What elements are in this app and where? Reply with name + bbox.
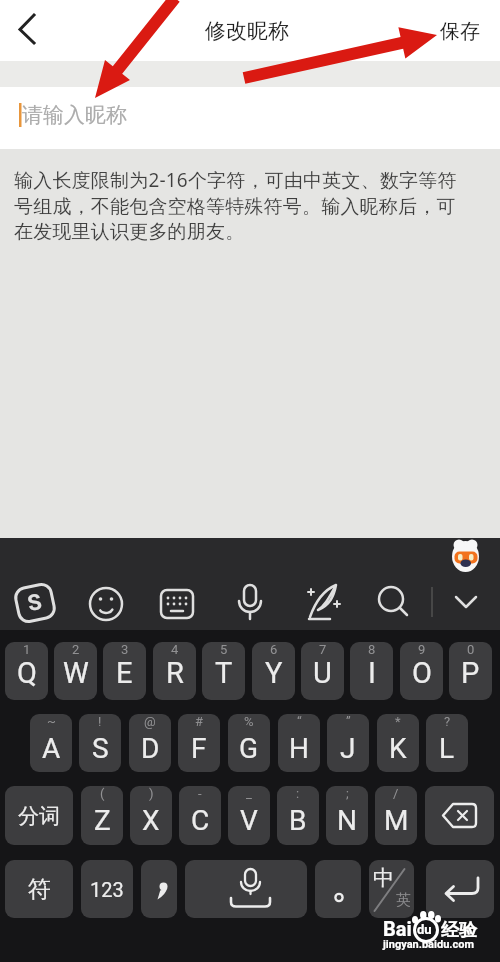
staticText: T: [215, 656, 233, 690]
staticText: 英: [396, 891, 411, 910]
button[interactable]: #: [178, 714, 220, 772]
staticText: L: [439, 732, 455, 765]
button[interactable]: [84, 582, 128, 624]
staticText: -: [198, 786, 202, 801]
button[interactable]: 分词: [5, 786, 73, 845]
button[interactable]: [444, 582, 488, 624]
button[interactable]: [141, 860, 177, 918]
button[interactable]: [425, 786, 494, 845]
button[interactable]: [426, 860, 494, 918]
button[interactable]: ?: [426, 714, 468, 772]
staticText: _: [246, 786, 252, 801]
staticText: 5: [220, 642, 228, 657]
button[interactable]: %: [228, 714, 270, 772]
staticText: 输入长度限制为2-16个字符，可由中英文、数字等符 号组成，不能包含空格等特殊符…: [14, 167, 457, 243]
staticText: /: [393, 786, 399, 801]
staticText: 修改昵称: [205, 18, 289, 44]
staticText: 保存: [440, 19, 480, 44]
button[interactable]: 5: [202, 642, 245, 700]
staticText: J: [340, 732, 356, 765]
button[interactable]: :: [277, 786, 319, 845]
button[interactable]: /: [375, 786, 417, 845]
staticText: N: [337, 804, 357, 837]
staticText: D: [141, 732, 160, 765]
staticText: 6: [270, 642, 278, 657]
staticText: 9: [418, 642, 426, 657]
staticText: ): [149, 786, 154, 801]
button[interactable]: [301, 582, 345, 624]
button[interactable]: 1: [5, 642, 48, 700]
staticText: *: [395, 714, 401, 729]
staticText: 0: [467, 642, 475, 657]
staticText: E: [116, 656, 133, 690]
button[interactable]: ;: [326, 786, 368, 845]
button[interactable]: 123: [81, 860, 133, 918]
staticText: #: [195, 714, 204, 729]
staticText: M: [384, 804, 409, 837]
button[interactable]: ): [130, 786, 172, 845]
staticText: 123: [90, 878, 124, 901]
staticText: P: [461, 656, 480, 690]
staticText: Z: [94, 804, 111, 837]
button[interactable]: ~: [30, 714, 72, 772]
staticText: 请输入昵称: [22, 102, 127, 128]
staticText: V: [240, 804, 258, 837]
staticText: X: [142, 804, 160, 837]
button[interactable]: 9: [400, 642, 443, 700]
staticText: W: [63, 656, 89, 690]
button[interactable]: (: [81, 786, 123, 845]
staticText: 8: [368, 642, 376, 657]
button[interactable]: -: [179, 786, 221, 845]
button[interactable]: 2: [54, 642, 97, 700]
staticText: Y: [265, 656, 283, 690]
staticText: 4: [171, 642, 179, 657]
staticText: ?: [444, 714, 451, 729]
button[interactable]: “: [278, 714, 320, 772]
staticText: F: [191, 732, 207, 765]
button[interactable]: 0: [449, 642, 492, 700]
staticText: “: [297, 714, 302, 729]
staticText: B: [289, 804, 307, 837]
staticText: Bai: [383, 917, 412, 940]
button[interactable]: @: [129, 714, 171, 772]
staticText: R: [166, 656, 184, 690]
staticText: ;: [346, 786, 349, 801]
button[interactable]: 保存: [430, 12, 490, 50]
staticText: 分词: [18, 803, 60, 829]
staticText: U: [313, 656, 332, 690]
staticText: G: [239, 732, 259, 765]
button[interactable]: ”: [327, 714, 369, 772]
button[interactable]: [228, 582, 272, 624]
staticText: K: [389, 732, 407, 765]
button[interactable]: 8: [350, 642, 393, 700]
button[interactable]: 4: [153, 642, 196, 700]
button[interactable]: *: [377, 714, 419, 772]
staticText: :: [296, 786, 300, 801]
button[interactable]: 符: [5, 860, 73, 918]
button[interactable]: !: [79, 714, 121, 772]
button[interactable]: [155, 582, 199, 624]
button[interactable]: [185, 860, 307, 918]
button[interactable]: 7: [301, 642, 344, 700]
staticText: ~: [47, 714, 56, 729]
staticText: 中: [373, 865, 394, 891]
staticText: Q: [17, 656, 37, 690]
staticText: 2: [72, 642, 80, 657]
staticText: 符: [28, 875, 51, 904]
staticText: (: [100, 786, 105, 801]
button[interactable]: _: [228, 786, 270, 845]
button[interactable]: [0, 0, 60, 61]
staticText: %: [244, 714, 254, 729]
button[interactable]: [372, 582, 416, 624]
button[interactable]: 中: [369, 860, 414, 918]
staticText: du: [417, 922, 432, 937]
button[interactable]: 3: [103, 642, 146, 700]
button[interactable]: [315, 860, 361, 918]
staticText: A: [42, 732, 61, 765]
staticText: S: [25, 589, 45, 617]
staticText: ”: [346, 714, 351, 729]
button[interactable]: [13, 582, 57, 624]
button[interactable]: 请输入昵称: [0, 87, 500, 149]
button[interactable]: 6: [252, 642, 295, 700]
staticText: 7: [319, 642, 327, 657]
